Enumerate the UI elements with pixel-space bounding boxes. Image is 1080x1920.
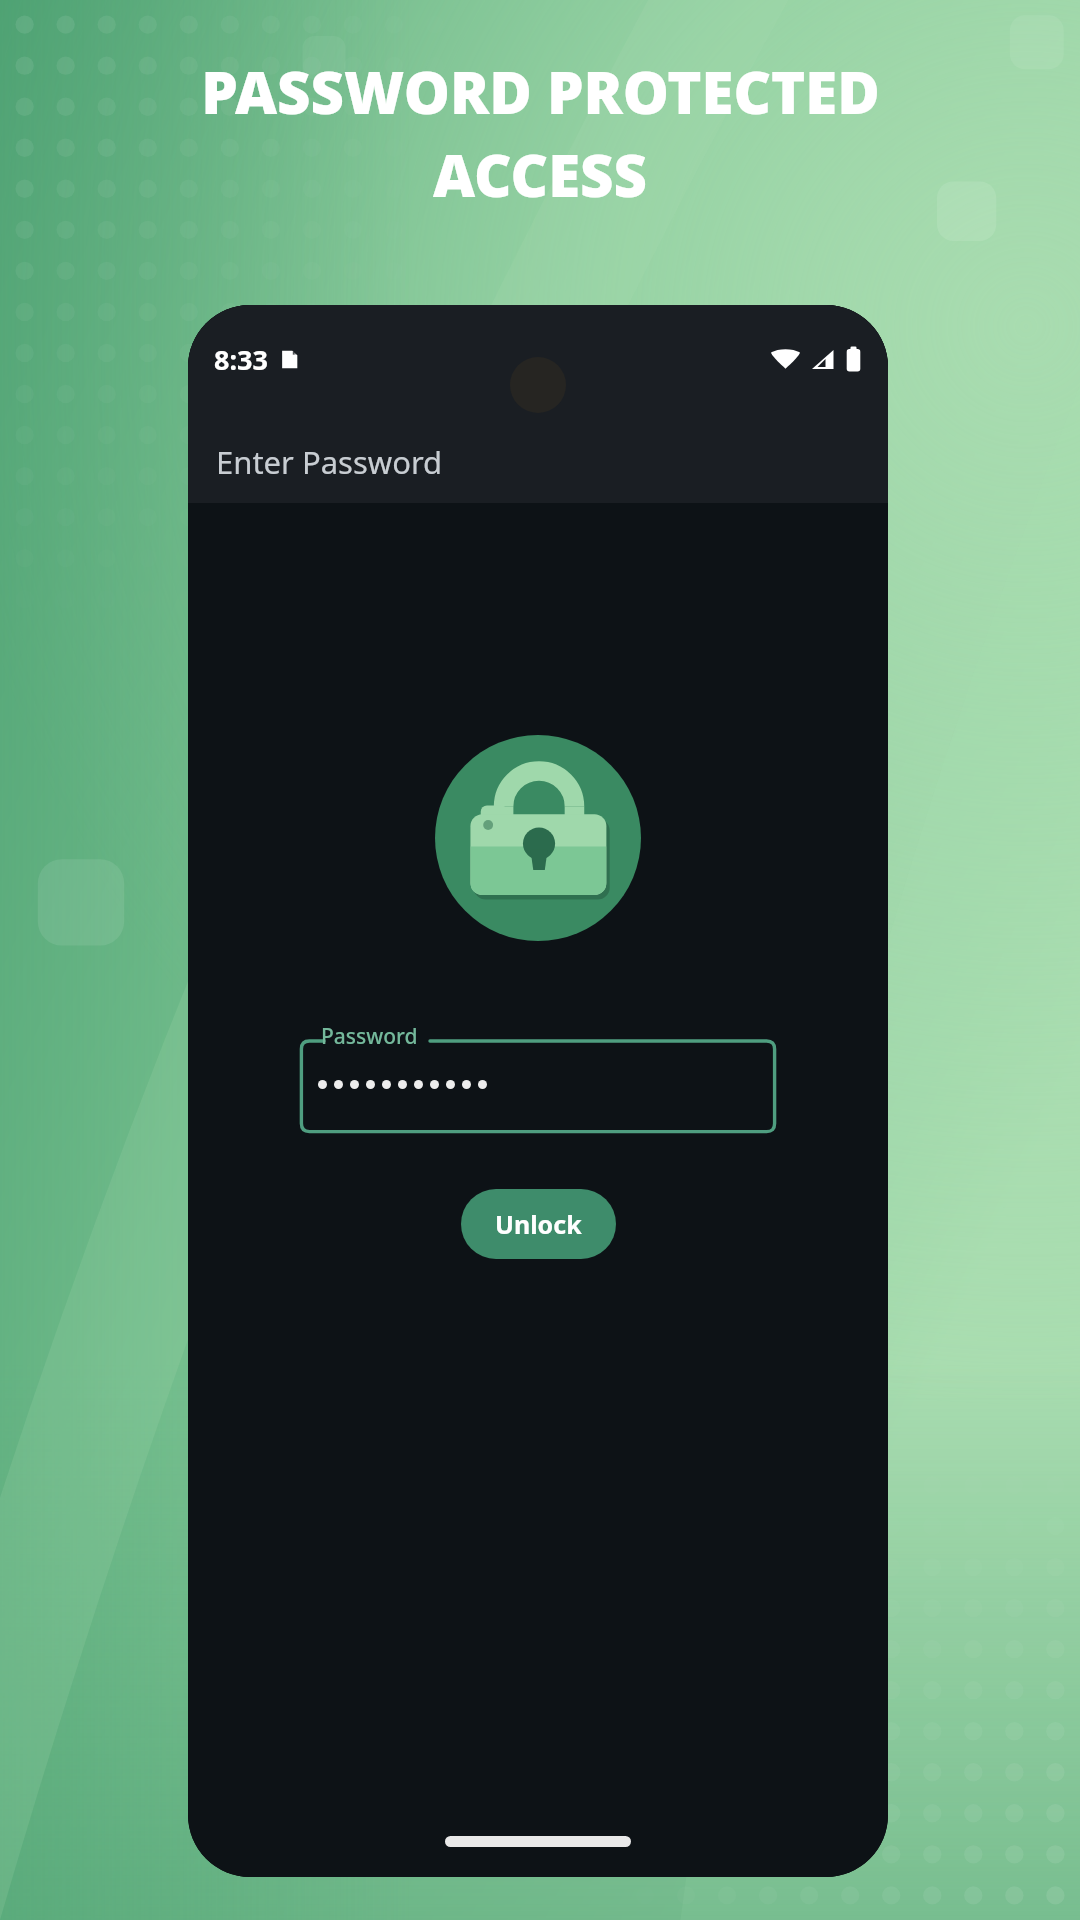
staticText: Password (321, 1022, 418, 1051)
staticText: Unlock (495, 1207, 582, 1241)
other: Locked (435, 735, 641, 941)
staticText: ACCESS (433, 135, 647, 214)
staticText: PASSWORD PROTECTED (201, 52, 880, 131)
button[interactable]: Password (298, 1033, 778, 1135)
button[interactable]: Unlock (461, 1189, 616, 1259)
staticText: Enter Password (216, 441, 443, 483)
staticText: 8:33 (214, 341, 268, 378)
